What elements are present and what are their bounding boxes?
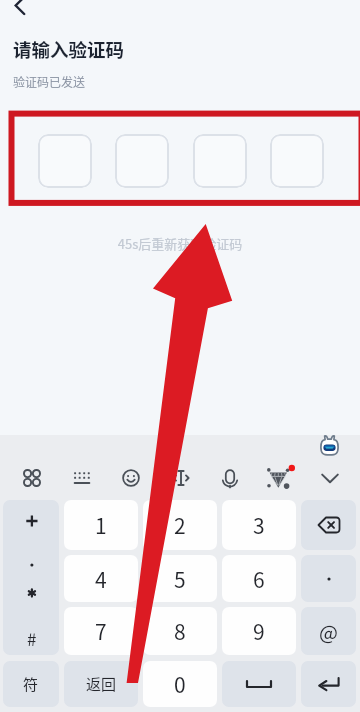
- staticText: #: [27, 626, 37, 651]
- button[interactable]: 5: [143, 555, 217, 602]
- staticText: 返回: [86, 673, 117, 695]
- button[interactable]: 3: [222, 500, 296, 550]
- button[interactable]: Backspace: [301, 500, 356, 550]
- button[interactable]: [38, 134, 92, 188]
- staticText: 请输入验证码: [13, 36, 125, 63]
- button[interactable]: [193, 134, 247, 188]
- button[interactable]: 8: [143, 607, 217, 655]
- button[interactable]: Hide keyboard: [315, 463, 345, 493]
- button[interactable]: 9: [222, 607, 296, 655]
- button[interactable]: 2: [143, 500, 217, 550]
- button[interactable]: Symbols: [3, 500, 59, 655]
- staticText: 5: [174, 564, 186, 594]
- button[interactable]: Enter: [301, 661, 356, 707]
- staticText: 3: [253, 510, 265, 540]
- staticText: 2: [174, 510, 186, 540]
- staticText: 4: [95, 564, 107, 594]
- button[interactable]: Space: [222, 661, 296, 707]
- button[interactable]: [115, 134, 169, 188]
- button[interactable]: Apps: [17, 463, 47, 493]
- button[interactable]: 4: [64, 555, 138, 602]
- staticText: 0: [174, 669, 186, 699]
- staticText: 7: [95, 616, 107, 646]
- staticText: 45s后重新获取验证码: [0, 234, 360, 253]
- button[interactable]: Back: [8, 0, 40, 24]
- button[interactable]: 1: [64, 500, 138, 550]
- button[interactable]: [270, 134, 324, 188]
- button[interactable]: Emoji: [116, 463, 146, 493]
- staticText: 符: [23, 673, 39, 695]
- staticText: 验证码已发送: [13, 73, 86, 90]
- staticText: @: [319, 617, 338, 646]
- button[interactable]: Move cursor: [166, 463, 196, 493]
- button[interactable]: 符: [3, 661, 59, 707]
- staticText: 6: [253, 564, 265, 594]
- staticText: 8: [174, 616, 186, 646]
- button[interactable]: Input method logo: [319, 435, 340, 456]
- button[interactable]: Themes: [263, 463, 293, 493]
- button[interactable]: 返回: [64, 661, 138, 707]
- button[interactable]: Voice input: [215, 463, 245, 493]
- button[interactable]: @: [301, 607, 356, 655]
- button[interactable]: 7: [64, 607, 138, 655]
- staticText: 9: [253, 616, 265, 646]
- staticText: 1: [95, 510, 107, 540]
- button[interactable]: 6: [222, 555, 296, 602]
- button[interactable]: Period: [301, 555, 356, 602]
- button[interactable]: 0: [143, 661, 217, 707]
- button[interactable]: Keyboard layout: [67, 463, 97, 493]
